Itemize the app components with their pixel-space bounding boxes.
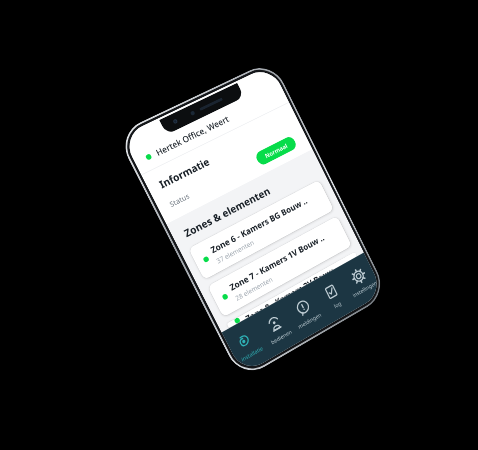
button[interactable]: bedienen: [252, 299, 301, 357]
staticText: Status: [168, 190, 191, 209]
staticText: Zone 8 - Kamers 2V Bouw ..: [243, 262, 339, 319]
button[interactable]: log: [309, 268, 357, 324]
staticText: log: [333, 299, 342, 309]
staticText: 37 elementen: [215, 238, 255, 265]
button[interactable]: Zone 8 - Kamers 2V Bouw ..: [226, 252, 357, 328]
staticText: bedienen: [269, 328, 293, 346]
button[interactable]: installatie: [221, 316, 273, 375]
staticText: Zone 6 - Kamers BG Bouw ..: [209, 195, 309, 256]
staticText: Hertek Office, Weert: [154, 113, 231, 158]
button[interactable]: Zone 6 - Kamers BG Bouw ..: [188, 180, 334, 280]
staticText: Normaal: [263, 141, 289, 160]
staticText: Zones & elementen: [182, 184, 272, 240]
staticText: Informatie: [157, 155, 212, 191]
staticText: meldingen: [297, 311, 323, 330]
staticText: Zone 7 - Kamers 1V Bouw ..: [228, 232, 326, 293]
staticText: 28 elementen: [234, 275, 274, 303]
staticText: instellingen: [351, 279, 378, 299]
button[interactable]: Normaal: [254, 135, 298, 167]
staticText: installatie: [240, 344, 264, 363]
button[interactable]: meldingen: [280, 283, 329, 341]
button[interactable]: Zone 7 - Kamers 1V Bouw ..: [207, 216, 352, 317]
button[interactable]: instellingen: [337, 253, 384, 308]
